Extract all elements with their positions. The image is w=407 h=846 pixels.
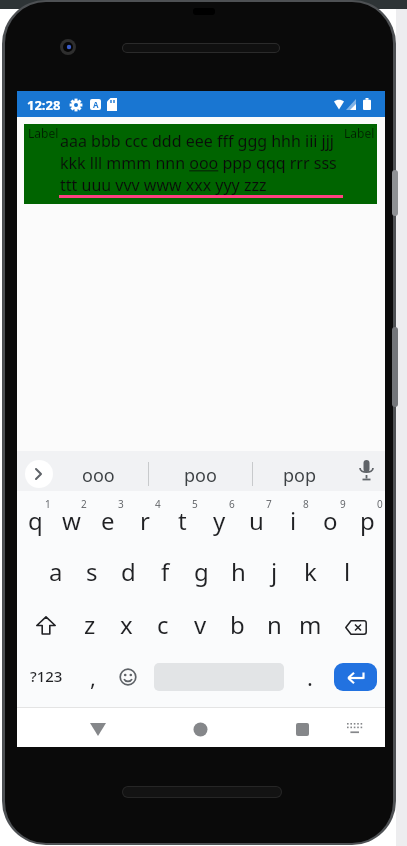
staticText: 6 <box>229 497 235 511</box>
staticText: d <box>121 555 136 588</box>
staticText: poo <box>184 463 217 488</box>
button[interactable]: d <box>110 551 146 591</box>
button[interactable]: e <box>90 500 126 540</box>
staticText: Label <box>28 125 59 141</box>
button[interactable]: m <box>292 604 328 644</box>
button[interactable]: j <box>256 551 292 591</box>
button[interactable]: z <box>72 604 108 644</box>
button[interactable]: n <box>256 604 292 644</box>
staticText: y <box>213 504 226 537</box>
staticText: 0 <box>377 497 383 511</box>
button[interactable]: i <box>275 500 311 540</box>
button[interactable]: x <box>108 604 144 644</box>
staticText: 2 <box>81 497 87 511</box>
staticText: 1 <box>45 497 51 511</box>
staticText: . <box>307 662 313 692</box>
button[interactable]: o <box>312 500 348 540</box>
staticText: p <box>360 504 375 537</box>
staticText: ?123 <box>30 666 63 686</box>
button[interactable]: l <box>329 551 365 591</box>
staticText: aaa bbb ccc ddd eee fff ggg hhh iii jjj … <box>60 130 337 196</box>
button[interactable]: u <box>238 500 274 540</box>
staticText: Label <box>344 125 375 141</box>
button[interactable]: ooo <box>63 457 133 493</box>
staticText: u <box>249 504 264 537</box>
button[interactable]: k <box>292 551 328 591</box>
button[interactable]: h <box>220 551 256 591</box>
staticText: g <box>194 555 209 588</box>
button[interactable] <box>24 124 377 204</box>
staticText: t <box>178 504 187 537</box>
button[interactable]: q <box>17 500 53 540</box>
staticText: s <box>86 555 98 588</box>
button[interactable]: s <box>74 551 110 591</box>
button[interactable] <box>334 663 377 691</box>
button[interactable]: poo <box>165 457 235 493</box>
staticText: c <box>157 608 169 641</box>
button[interactable]: y <box>201 500 237 540</box>
button[interactable]: , <box>78 659 108 695</box>
staticText: v <box>194 608 207 641</box>
staticText: 9 <box>340 497 346 511</box>
button[interactable] <box>119 668 137 686</box>
button[interactable] <box>25 460 53 488</box>
button[interactable]: t <box>164 500 200 540</box>
button[interactable] <box>193 722 208 737</box>
button[interactable]: p <box>349 500 385 540</box>
staticText: w <box>62 504 81 537</box>
staticText: z <box>84 608 96 641</box>
button[interactable]: pop <box>265 457 335 493</box>
button[interactable]: f <box>147 551 183 591</box>
staticText: ooo <box>82 463 115 488</box>
button[interactable] <box>347 723 363 736</box>
button[interactable]: w <box>53 500 89 540</box>
button[interactable]: ?123 <box>24 658 68 694</box>
staticText: h <box>231 555 246 588</box>
staticText: o <box>323 504 338 537</box>
staticText: 4 <box>155 497 161 511</box>
button[interactable]: g <box>183 551 219 591</box>
staticText: r <box>140 504 150 537</box>
staticText: j <box>271 555 278 588</box>
staticText: , <box>90 662 96 692</box>
button[interactable]: r <box>127 500 163 540</box>
staticText: 5 <box>192 497 198 511</box>
staticText: b <box>230 608 245 641</box>
staticText: 12:28 <box>27 96 61 114</box>
button[interactable] <box>345 620 367 635</box>
staticText: f <box>161 555 170 588</box>
button[interactable]: . <box>295 659 325 695</box>
button[interactable]: c <box>145 604 181 644</box>
staticText: 7 <box>266 497 272 511</box>
button[interactable] <box>296 723 309 736</box>
staticText: x <box>120 608 133 641</box>
staticText: m <box>299 608 322 641</box>
staticText: i <box>290 504 297 537</box>
staticText: 8 <box>303 497 309 511</box>
staticText: q <box>28 504 43 537</box>
button[interactable] <box>36 616 56 635</box>
staticText: e <box>101 504 115 537</box>
button[interactable]: b <box>219 604 255 644</box>
staticText: 3 <box>118 497 124 511</box>
button[interactable] <box>358 460 375 483</box>
staticText: pop <box>283 463 317 488</box>
button[interactable]: a <box>38 551 74 591</box>
staticText: A <box>93 99 99 110</box>
staticText: l <box>344 555 351 588</box>
staticText: a <box>49 555 63 588</box>
staticText: n <box>267 608 282 641</box>
staticText: k <box>304 555 317 588</box>
button[interactable] <box>90 723 106 736</box>
button[interactable]: v <box>182 604 218 644</box>
